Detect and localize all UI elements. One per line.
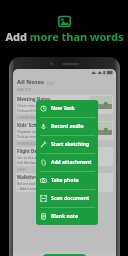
staticText: Call Michael on land xyxy=(17,160,50,165)
button[interactable]: Meeting Notes xyxy=(16,95,113,114)
staticText: (10) xyxy=(47,81,54,86)
staticText: Take photo xyxy=(51,177,79,184)
staticText: 3 HOURS AGO xyxy=(17,142,37,146)
staticText: Add attachment xyxy=(51,159,92,166)
button[interactable]: Add attachment xyxy=(36,154,98,171)
button[interactable]: New Task xyxy=(36,100,98,117)
staticText: Pickup rotation list xyxy=(17,134,48,139)
staticText: Flight Details xyxy=(17,148,47,154)
staticText: All Notes xyxy=(17,78,45,86)
staticText: Before each walkthrough… xyxy=(17,181,62,186)
button[interactable]: Walkthrough Procedure xyxy=(16,173,113,192)
button[interactable]: Flight Details xyxy=(16,147,113,166)
button[interactable]: Start sketching xyxy=(36,136,98,153)
staticText: Scan document xyxy=(51,195,90,202)
staticText: Blank note xyxy=(51,213,78,220)
staticText: 2 HOURS AGO xyxy=(17,116,37,120)
button[interactable]: Record audio xyxy=(36,118,98,135)
button[interactable]: New note xyxy=(42,254,87,256)
staticText: Client retro sync-up xyxy=(17,103,50,108)
staticText: Get to the airport 2h xyxy=(17,155,51,160)
staticText: Add more than words xyxy=(5,29,124,44)
staticText: Start sketching xyxy=(51,141,90,148)
button[interactable]: Blank note xyxy=(36,208,98,225)
staticText: JUNE 2021 xyxy=(17,88,32,92)
button[interactable]: Take photo xyxy=(36,172,98,189)
staticText: Playdate schedule xyxy=(17,129,47,134)
button[interactable]: Kids' School xyxy=(16,121,113,140)
staticText: Meeting Notes xyxy=(17,96,51,102)
staticText: 1/6/21 xyxy=(17,168,27,172)
staticText: Onboard first draft xyxy=(17,108,48,113)
staticText: Record audio xyxy=(51,123,84,130)
button[interactable]: Scan document xyxy=(36,190,98,207)
staticText: Kids' School xyxy=(17,122,44,128)
staticText: – Add known issues to xyxy=(17,186,54,191)
staticText: New Task xyxy=(51,105,75,112)
staticText: Walkthrough Procedure xyxy=(17,174,71,180)
